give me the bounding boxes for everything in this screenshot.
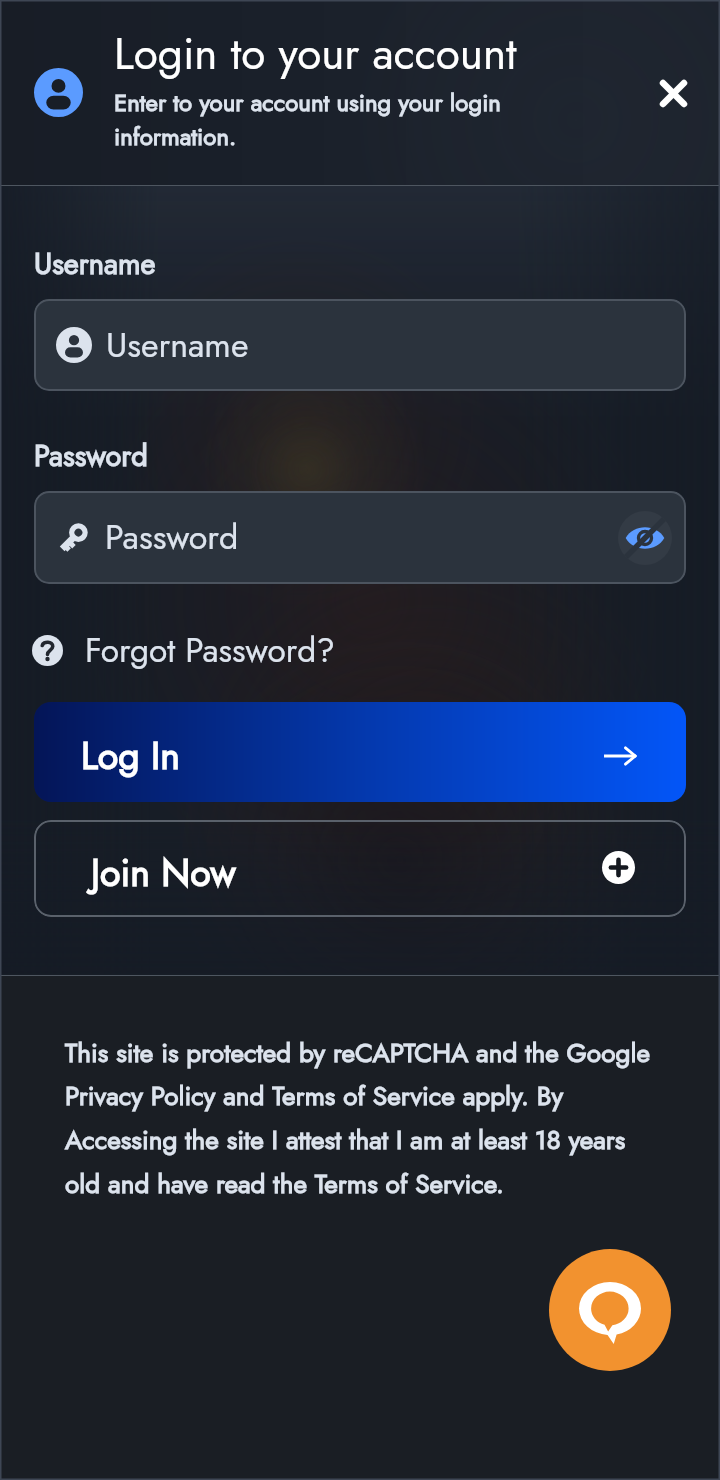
staticText: Login to your account xyxy=(114,22,517,86)
other: Register xyxy=(602,851,635,884)
staticText: Forgot Password? xyxy=(85,626,335,674)
staticText: Password xyxy=(34,435,148,477)
staticText: Username xyxy=(106,321,249,370)
button[interactable]: Join Now xyxy=(34,820,686,917)
button[interactable]: Password xyxy=(34,491,686,584)
staticText: Username xyxy=(34,243,156,285)
staticText: Join Now xyxy=(91,846,236,900)
button[interactable]: Show password xyxy=(618,511,672,565)
other: Continue xyxy=(603,739,637,773)
button[interactable]: Close xyxy=(645,65,701,121)
staticText: This site is protected by reCAPTCHA and … xyxy=(65,1034,661,1203)
button[interactable]: Log In xyxy=(34,702,686,802)
staticText: Log In xyxy=(81,729,180,783)
button[interactable]: Chat xyxy=(549,1249,671,1371)
staticText: Password xyxy=(105,513,239,562)
button[interactable]: Username xyxy=(34,299,686,391)
button[interactable]: Forgot Password? xyxy=(32,624,335,676)
staticText: Enter to your account using your login i… xyxy=(114,85,514,154)
